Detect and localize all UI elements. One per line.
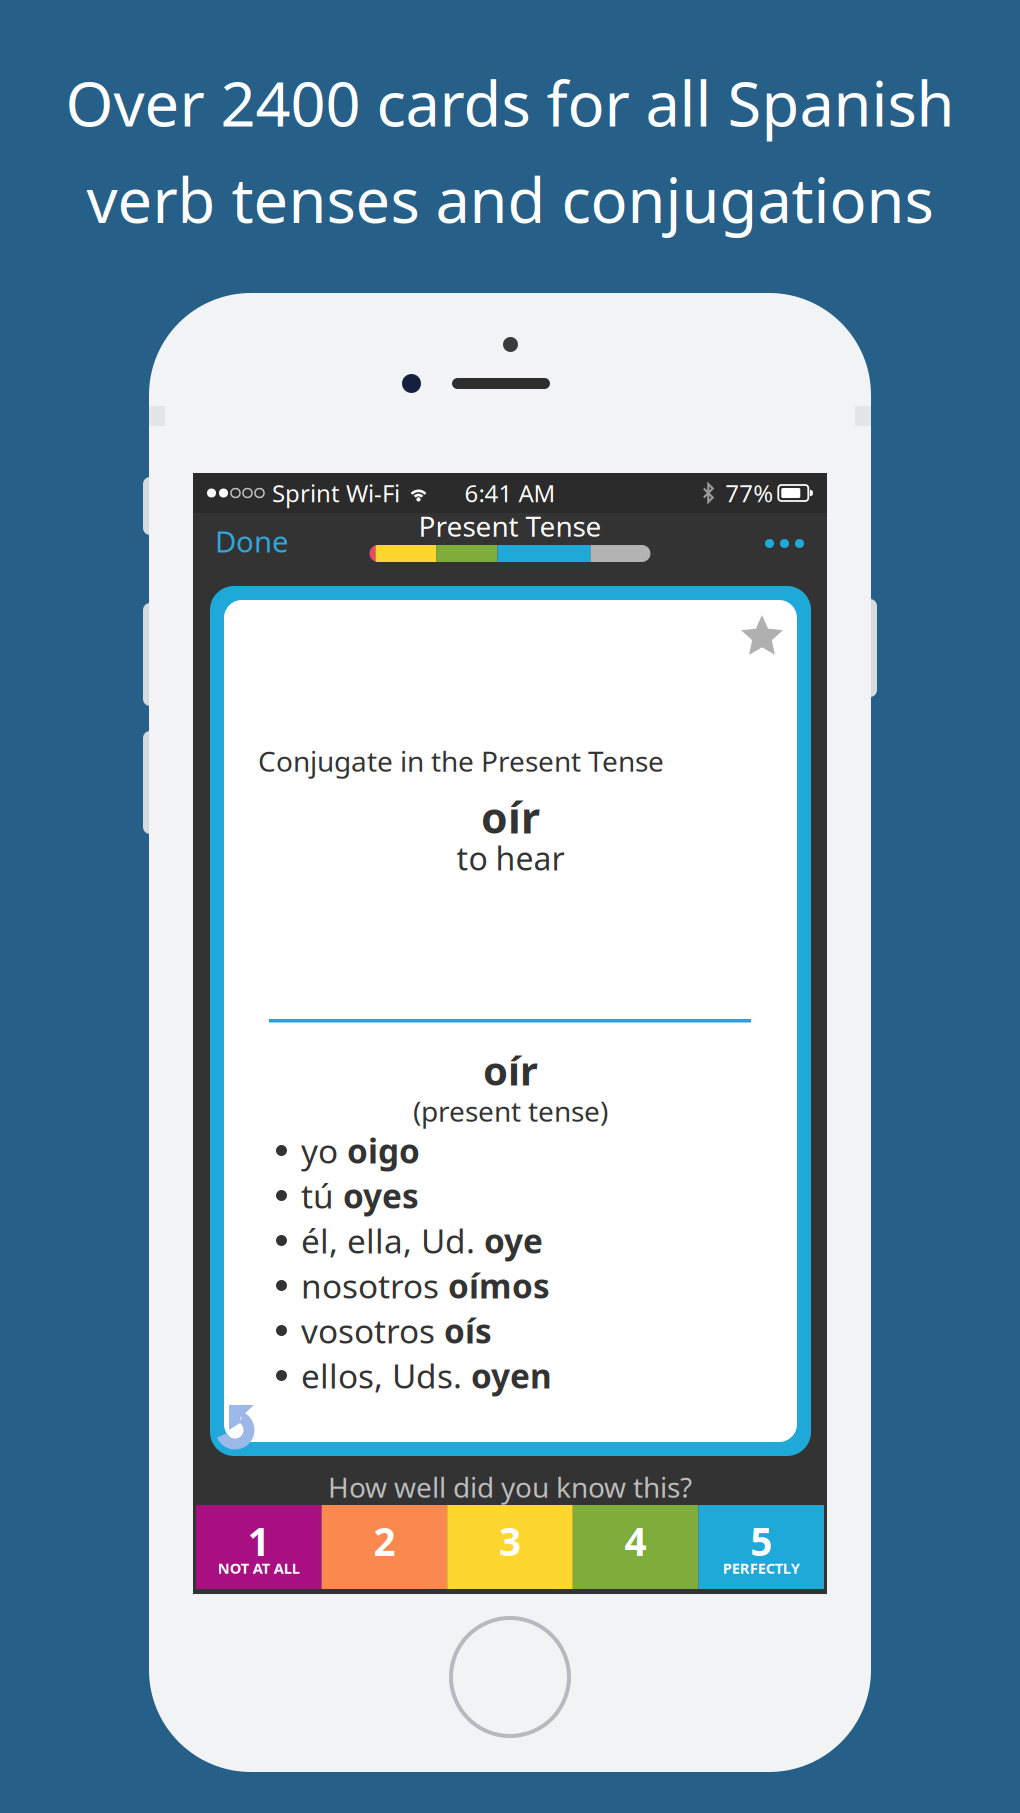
staticText: ellos, Uds. (301, 1353, 471, 1398)
staticText: Present Tense (418, 507, 601, 545)
staticText: oír (483, 1043, 538, 1096)
button[interactable]: 4 (573, 1505, 698, 1589)
button[interactable]: 2 (322, 1505, 447, 1589)
staticText: 3 (499, 1515, 521, 1567)
staticText: How well did you know this? (328, 1468, 692, 1506)
staticText: oír (481, 789, 540, 845)
staticText: oímos (448, 1263, 550, 1308)
staticText: oyes (343, 1173, 419, 1218)
button[interactable]: Done (193, 518, 311, 564)
staticText: verb tenses and conjugations (86, 158, 933, 240)
staticText: 5 (750, 1515, 772, 1567)
staticText: oyen (471, 1353, 552, 1398)
staticText: 1 (248, 1515, 270, 1567)
staticText: Over 2400 cards for all Spanish (65, 62, 954, 143)
staticText: 2 (373, 1515, 395, 1567)
staticText: tú (301, 1173, 343, 1218)
staticText: oís (444, 1308, 492, 1353)
staticText: to hear (456, 837, 564, 879)
button[interactable]: More options (742, 515, 827, 566)
staticText: Conjugate in the Present Tense (258, 742, 664, 780)
staticText: vosotros (301, 1308, 444, 1353)
staticText: oye (484, 1218, 543, 1263)
button[interactable]: 5 (698, 1505, 824, 1589)
staticText: (present tense) (413, 1092, 608, 1130)
button[interactable]: Undo (212, 1403, 258, 1453)
staticText: nosotros (301, 1263, 448, 1308)
staticText: Done (215, 521, 289, 560)
staticText: 6:41 AM (464, 477, 555, 509)
button[interactable]: 1 (196, 1505, 322, 1589)
button[interactable]: Favourite (739, 600, 797, 659)
staticText: yo (301, 1128, 347, 1173)
staticText: NOT AT ALL (218, 1558, 300, 1578)
staticText: Sprint Wi-Fi (272, 477, 400, 509)
staticText: 77% (725, 477, 773, 509)
staticText: 4 (625, 1515, 647, 1567)
staticText: PERFECTLY (723, 1558, 800, 1578)
staticText: él, ella, Ud. (301, 1218, 484, 1263)
button[interactable]: 3 (447, 1505, 573, 1589)
staticText: oigo (347, 1128, 420, 1173)
